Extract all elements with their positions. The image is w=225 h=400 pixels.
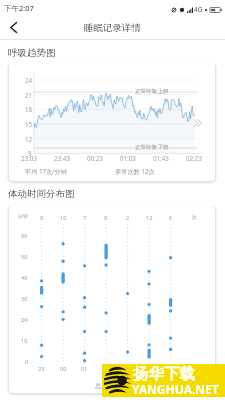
staticText: 01 xyxy=(81,365,88,373)
staticText: 23 xyxy=(38,365,45,373)
staticText: 05 xyxy=(167,365,174,373)
staticText: 正常呼吸上限 xyxy=(135,88,169,95)
button[interactable]: 返回 xyxy=(0,16,27,39)
staticText: 异常次数 12次 xyxy=(115,167,155,175)
staticText: 23:03 xyxy=(21,154,37,162)
button[interactable]: 分钟 xyxy=(9,205,215,393)
staticText: 次 xyxy=(192,214,197,220)
staticText: 15 xyxy=(25,120,33,128)
staticText: 7 xyxy=(83,214,87,222)
staticText: 体动时间分布图 xyxy=(8,188,75,200)
staticText: 4G xyxy=(194,5,203,14)
staticText: 10 xyxy=(21,337,28,345)
staticText: 0 xyxy=(25,358,29,366)
staticText: 02:23 xyxy=(186,154,202,162)
staticText: 18 xyxy=(25,105,33,113)
staticText: 24 xyxy=(25,76,33,84)
staticText: 2 xyxy=(126,214,130,222)
staticText: 00:23 xyxy=(87,154,103,162)
staticText: 12 xyxy=(25,135,33,143)
staticText: 总次数 55次 xyxy=(95,381,129,389)
staticText: YANGHUA.NET xyxy=(132,381,219,397)
staticText: 睡眠记录详情 xyxy=(84,22,141,34)
staticText: 60 xyxy=(21,232,28,240)
staticText: 呼吸趋势图 xyxy=(8,47,56,59)
staticText: 30 xyxy=(21,295,28,303)
staticText: 21 xyxy=(25,91,33,99)
staticText: 23:43 xyxy=(54,154,70,162)
staticText: 20 xyxy=(21,316,28,324)
staticText: 下午2:07 xyxy=(4,3,34,13)
staticText: 扬华下载 xyxy=(133,364,195,384)
staticText: 02 xyxy=(103,365,110,373)
staticText: 分钟 xyxy=(18,213,28,219)
staticText: 9 xyxy=(40,214,44,222)
staticText: 9 xyxy=(28,149,32,157)
staticText: 40 xyxy=(21,274,28,282)
staticText: 03 xyxy=(124,365,131,373)
staticText: 10 xyxy=(60,214,67,222)
staticText: 04 xyxy=(146,365,153,373)
staticText: 50 xyxy=(21,253,28,261)
staticText: 9 xyxy=(104,214,108,222)
button[interactable]: 24 xyxy=(9,63,215,181)
staticText: 12 xyxy=(146,214,153,222)
staticText: 6 xyxy=(169,214,173,222)
staticText: 平均 17次/分钟 xyxy=(25,167,67,175)
staticText: 00 xyxy=(60,365,67,373)
staticText: 01:03 xyxy=(120,154,136,162)
staticText: 正常呼吸下限 xyxy=(135,144,169,151)
button[interactable]: 更多 xyxy=(193,118,203,128)
staticText: 01:43 xyxy=(153,154,169,162)
